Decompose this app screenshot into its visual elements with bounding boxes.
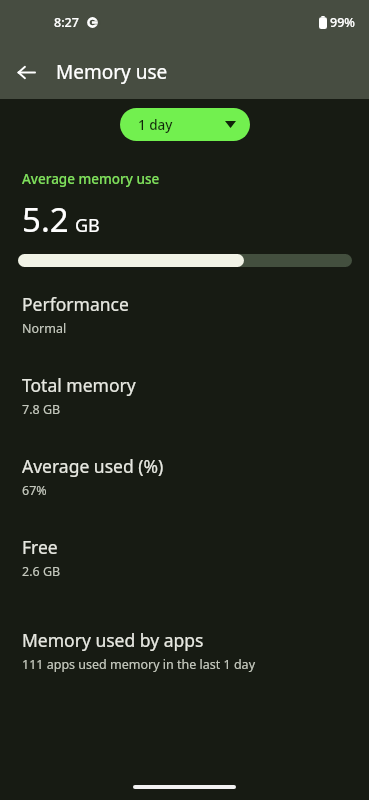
- staticText: 99%: [330, 14, 355, 31]
- staticText: 1 day: [138, 116, 173, 134]
- staticText: Memory used by apps: [22, 628, 204, 652]
- button[interactable]: Total memory: [0, 373, 369, 418]
- staticText: 67%: [22, 482, 47, 499]
- staticText: Memory use: [56, 59, 168, 85]
- staticText: Free: [22, 535, 58, 559]
- button[interactable]: Free: [0, 535, 369, 580]
- staticText: 2.6 GB: [22, 563, 61, 580]
- staticText: Average memory use: [22, 170, 160, 188]
- staticText: 7.8 GB: [22, 401, 61, 418]
- staticText: 8:27: [54, 14, 79, 31]
- button[interactable]: Average used (%): [0, 454, 369, 499]
- staticText: Performance: [22, 292, 129, 316]
- staticText: 5.2: [22, 197, 69, 242]
- staticText: GB: [75, 213, 100, 238]
- staticText: Total memory: [22, 373, 136, 397]
- button[interactable]: Performance: [0, 292, 369, 337]
- staticText: Normal: [22, 320, 67, 337]
- staticText: 111 apps used memory in the last 1 day: [22, 656, 256, 673]
- button[interactable]: Back: [6, 52, 46, 92]
- staticText: Average used (%): [22, 454, 164, 478]
- button[interactable]: Memory used by apps: [0, 628, 369, 673]
- button[interactable]: 1 day: [120, 108, 250, 141]
